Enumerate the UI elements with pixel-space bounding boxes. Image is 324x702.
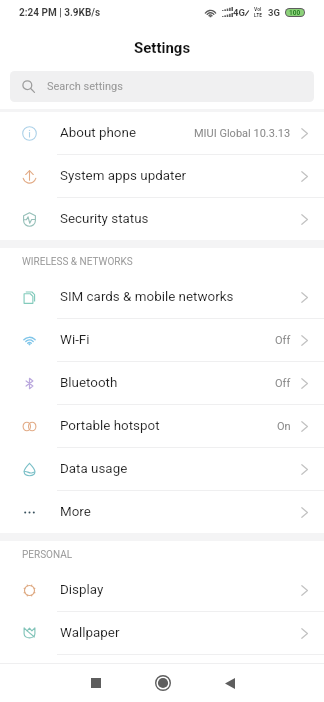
button[interactable]: Recents — [62, 664, 129, 702]
staticText: Data usage — [60, 461, 128, 477]
button[interactable]: Display — [0, 569, 324, 611]
staticText: Off — [275, 334, 291, 347]
button[interactable]: Bluetooth — [0, 362, 324, 404]
staticText: PERSONAL — [22, 549, 73, 561]
staticText: Portable hotspot — [60, 418, 160, 434]
staticText: LTE — [254, 12, 262, 18]
staticText: Wi-Fi — [60, 332, 90, 348]
staticText: SIM cards & mobile networks — [60, 289, 234, 305]
staticText: Display — [60, 582, 104, 598]
staticText: 4G — [233, 7, 245, 18]
staticText: MIUI Global 10.3.13 — [194, 127, 291, 140]
button[interactable]: Wallpaper — [0, 612, 324, 654]
staticText: Search settings — [47, 80, 123, 93]
staticText: Off — [275, 377, 291, 390]
button[interactable]: More — [0, 491, 324, 533]
button[interactable]: Back — [196, 664, 263, 702]
staticText: 100 — [289, 9, 301, 16]
staticText: System apps updater — [60, 168, 187, 184]
button[interactable]: System apps updater — [0, 155, 324, 197]
staticText: 3G — [268, 7, 280, 18]
staticText: Security status — [60, 211, 149, 227]
button[interactable]: SIM cards & mobile networks — [0, 276, 324, 318]
button[interactable]: Security status — [0, 198, 324, 240]
staticText: Vol — [254, 6, 262, 12]
button[interactable]: About phone — [0, 112, 324, 154]
staticText: On — [277, 420, 291, 433]
staticText: About phone — [60, 125, 137, 141]
staticText: Bluetooth — [60, 375, 118, 391]
staticText: More — [60, 504, 91, 520]
staticText: Settings — [134, 39, 191, 57]
button[interactable]: Wi-Fi — [0, 319, 324, 361]
button[interactable]: Search settings — [10, 71, 314, 102]
button[interactable]: Portable hotspot — [0, 405, 324, 447]
button[interactable]: Home — [129, 664, 196, 702]
staticText: 2:24 PM | 3.9KB/s — [19, 7, 101, 19]
staticText: Wallpaper — [60, 625, 120, 641]
button[interactable]: Data usage — [0, 448, 324, 490]
staticText: WIRELESS & NETWORKS — [22, 256, 133, 268]
